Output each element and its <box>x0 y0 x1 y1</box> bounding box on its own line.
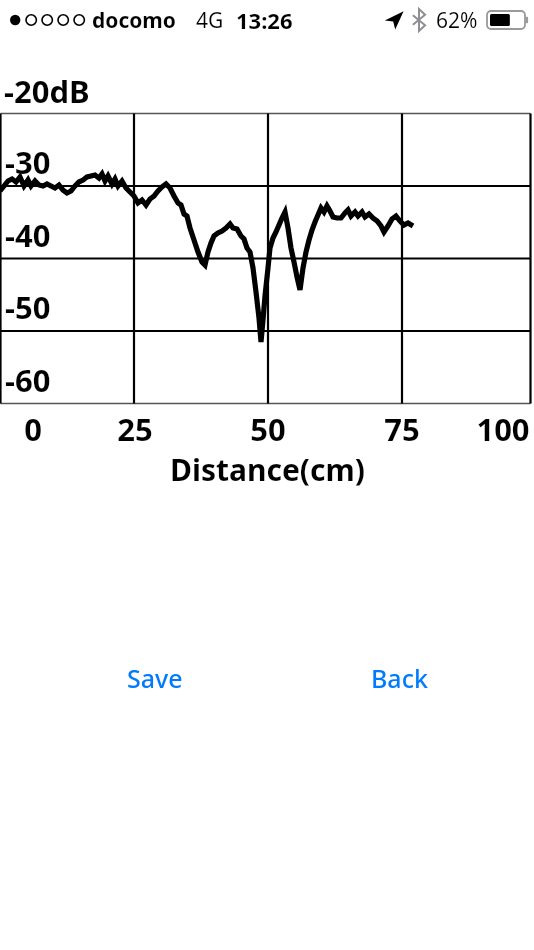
staticText: 13:26 <box>236 5 293 35</box>
staticText: Save <box>127 661 183 695</box>
button[interactable]: Save <box>95 656 215 700</box>
staticText: -30 <box>5 141 51 183</box>
staticText: -60 <box>5 359 51 401</box>
staticText: -40 <box>5 214 51 256</box>
staticText: 75 <box>384 408 420 450</box>
staticText: 0 <box>24 408 42 450</box>
staticText: -20dB <box>4 70 90 112</box>
staticText: 50 <box>250 408 286 450</box>
staticText: 62% <box>436 6 478 35</box>
staticText: 4G <box>196 6 224 35</box>
staticText: -50 <box>5 286 51 328</box>
other: Bluetooth <box>411 8 427 32</box>
button[interactable]: Back <box>339 656 459 700</box>
other: Location <box>384 10 404 30</box>
staticText: docomo <box>92 6 176 35</box>
staticText: Distance(cm) <box>170 449 365 490</box>
staticText: Back <box>371 661 428 695</box>
staticText: 25 <box>117 408 153 450</box>
staticText: 100 <box>476 408 530 450</box>
